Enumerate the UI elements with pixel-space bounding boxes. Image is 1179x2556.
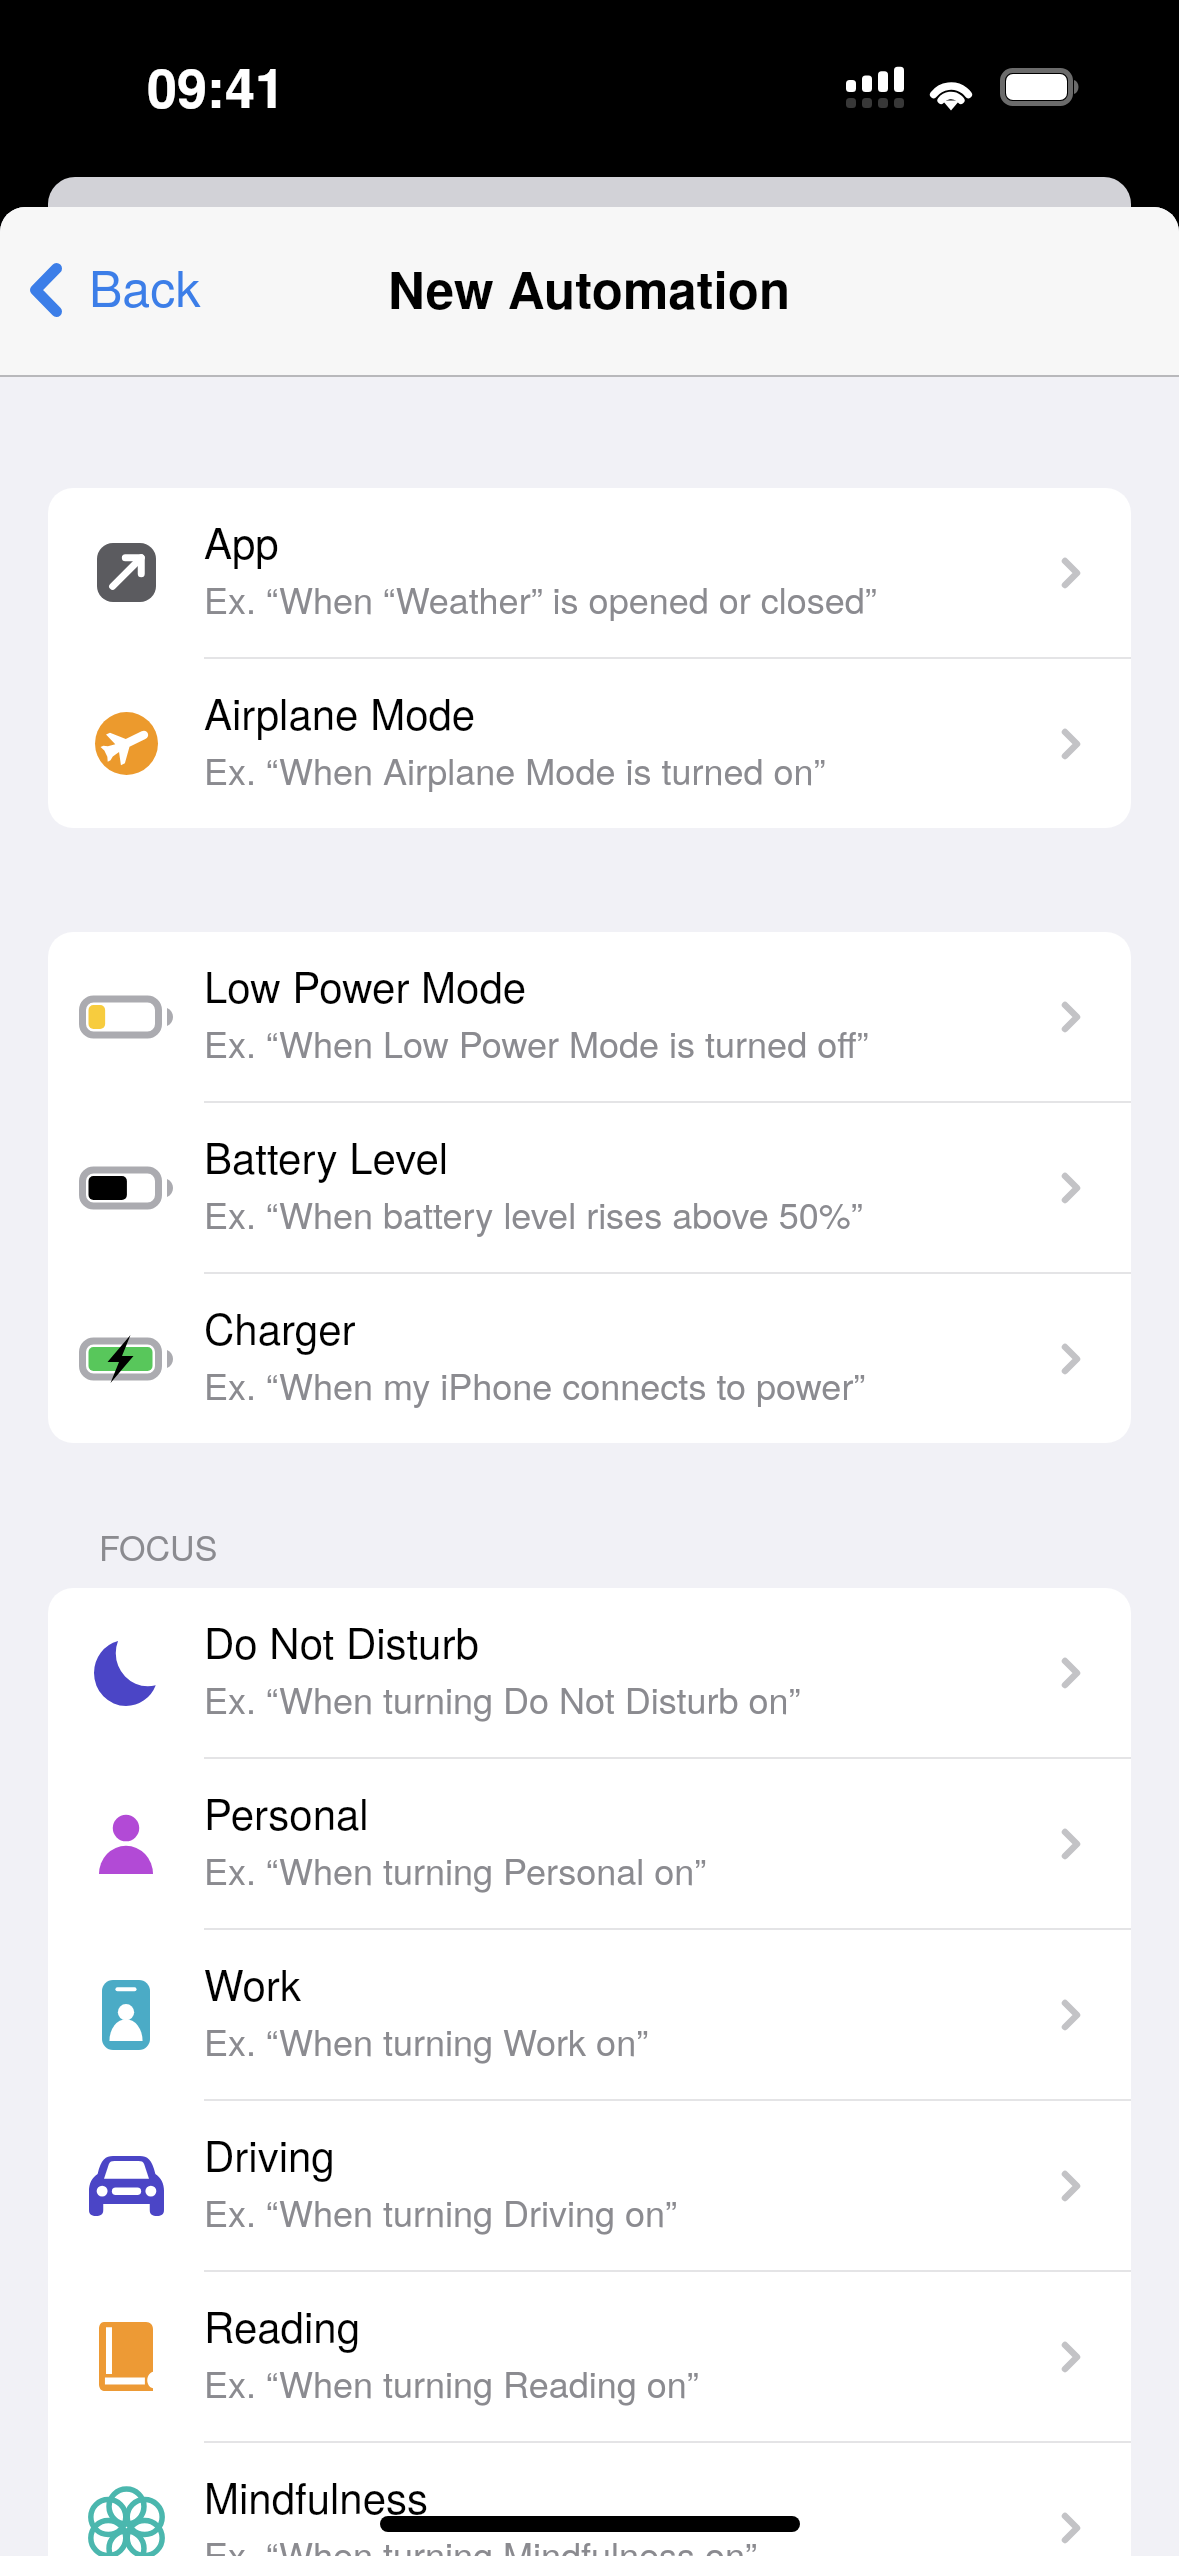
- button[interactable]: Do Not Disturb: [48, 1588, 1131, 1757]
- staticText: Ex. “When turning Work on”: [204, 2015, 649, 2067]
- button[interactable]: App: [48, 488, 1131, 657]
- staticText: App: [204, 511, 279, 571]
- button[interactable]: Personal: [48, 1759, 1131, 1928]
- staticText: Back: [89, 250, 201, 322]
- staticText: Ex. “When turning Personal on”: [204, 1844, 707, 1896]
- staticText: Ex. “When Low Power Mode is turned off”: [204, 1017, 869, 1069]
- staticText: Battery Level: [204, 1126, 449, 1186]
- staticText: Ex. “When turning Do Not Disturb on”: [204, 1673, 801, 1725]
- staticText: Mindfulness: [204, 2466, 429, 2526]
- staticText: Reading: [204, 2295, 360, 2355]
- staticText: Ex. “When Airplane Mode is turned on”: [204, 744, 826, 796]
- staticText: Ex. “When “Weather” is opened or closed”: [204, 573, 877, 625]
- button[interactable]: Work: [48, 1930, 1131, 2099]
- button[interactable]: Charger: [48, 1274, 1131, 1443]
- staticText: Ex. “When turning Mindfulness on”: [204, 2528, 758, 2556]
- staticText: Do Not Disturb: [204, 1611, 479, 1671]
- button[interactable]: Low Power Mode: [48, 932, 1131, 1101]
- staticText: Ex. “When battery level rises above 50%”: [204, 1188, 863, 1240]
- staticText: Ex. “When turning Driving on”: [204, 2186, 678, 2238]
- staticText: Low Power Mode: [204, 955, 527, 1015]
- staticText: New Automation: [388, 252, 791, 325]
- staticText: Work: [204, 1953, 301, 2013]
- staticText: Personal: [204, 1782, 369, 1842]
- button[interactable]: Reading: [48, 2272, 1131, 2441]
- button[interactable]: Airplane Mode: [48, 659, 1131, 828]
- button[interactable]: Mindfulness: [48, 2443, 1131, 2556]
- button[interactable]: Driving: [48, 2101, 1131, 2270]
- button[interactable]: Battery Level: [48, 1103, 1131, 1272]
- staticText: Ex. “When turning Reading on”: [204, 2357, 699, 2409]
- staticText: 09:41: [147, 47, 286, 124]
- staticText: Airplane Mode: [204, 682, 476, 742]
- button[interactable]: Back: [0, 236, 219, 336]
- staticText: Ex. “When my iPhone connects to power”: [204, 1359, 866, 1411]
- staticText: Driving: [204, 2124, 335, 2184]
- staticText: Charger: [204, 1297, 356, 1357]
- staticText: FOCUS: [99, 1522, 218, 1571]
